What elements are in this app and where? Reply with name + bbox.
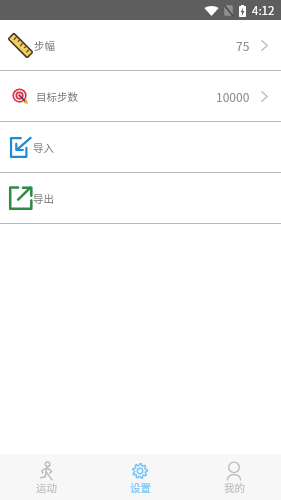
button[interactable]: 运动 [0, 454, 93, 500]
button[interactable]: 设置 [93, 454, 187, 500]
staticText: 75 [236, 37, 250, 54]
button[interactable]: 导入 [0, 122, 281, 172]
staticText: 目标步数 [36, 89, 78, 104]
staticText: 4:12 [252, 2, 275, 19]
staticText: 导入 [33, 140, 54, 155]
staticText: 导出 [33, 191, 54, 206]
button[interactable]: 目标步数 [0, 71, 281, 121]
staticText: 运动 [36, 480, 57, 495]
staticText: 我的 [224, 480, 245, 495]
button[interactable]: 步幅 [0, 20, 281, 70]
button[interactable]: 我的 [187, 454, 281, 500]
staticText: 设置 [130, 480, 151, 495]
button[interactable]: 导出 [0, 173, 281, 223]
staticText: 10000 [216, 88, 250, 105]
staticText: 步幅 [34, 38, 55, 53]
